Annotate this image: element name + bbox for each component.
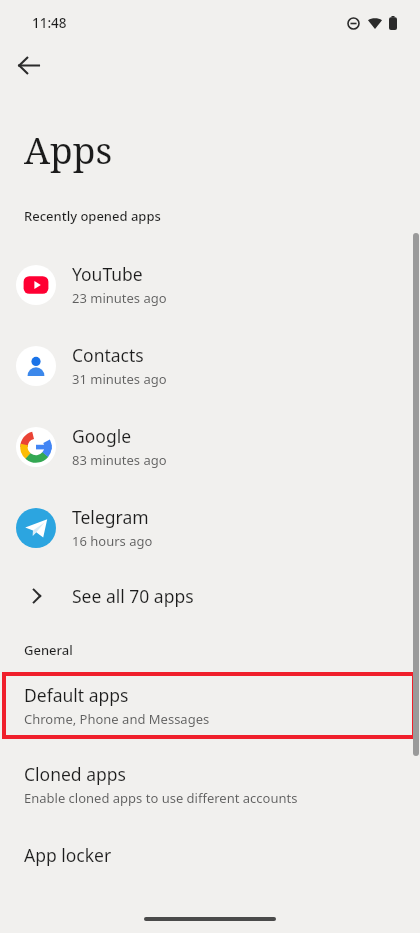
staticText: Telegram: [72, 505, 149, 529]
staticText: App locker: [24, 843, 112, 867]
staticText: Default apps: [24, 683, 129, 707]
staticText: 83 minutes ago: [72, 451, 167, 469]
staticText: Chrome, Phone and Messages: [24, 710, 210, 728]
staticText: Recently opened apps: [24, 207, 161, 225]
staticText: Enable cloned apps to use different acco…: [24, 789, 298, 807]
button[interactable]: Telegram: [0, 487, 420, 568]
staticText: Contacts: [72, 343, 144, 367]
button[interactable]: App locker: [0, 835, 420, 875]
staticText: YouTube: [72, 262, 143, 286]
staticText: Google: [72, 424, 132, 448]
staticText: 16 hours ago: [72, 532, 153, 550]
button[interactable]: YouTube: [0, 244, 420, 325]
button[interactable]: Google: [0, 406, 420, 487]
staticText: 11:48: [32, 14, 67, 32]
button[interactable]: Cloned apps: [0, 753, 420, 815]
button[interactable]: Default apps: [0, 672, 420, 739]
button[interactable]: Contacts: [0, 325, 420, 406]
staticText: Cloned apps: [24, 762, 126, 786]
staticText: See all 70 apps: [72, 584, 194, 608]
button[interactable]: Back: [9, 46, 47, 84]
staticText: Apps: [24, 124, 113, 174]
button[interactable]: See all 70 apps: [0, 568, 420, 624]
staticText: General: [24, 641, 73, 659]
staticText: 23 minutes ago: [72, 289, 167, 307]
staticText: 31 minutes ago: [72, 370, 167, 388]
